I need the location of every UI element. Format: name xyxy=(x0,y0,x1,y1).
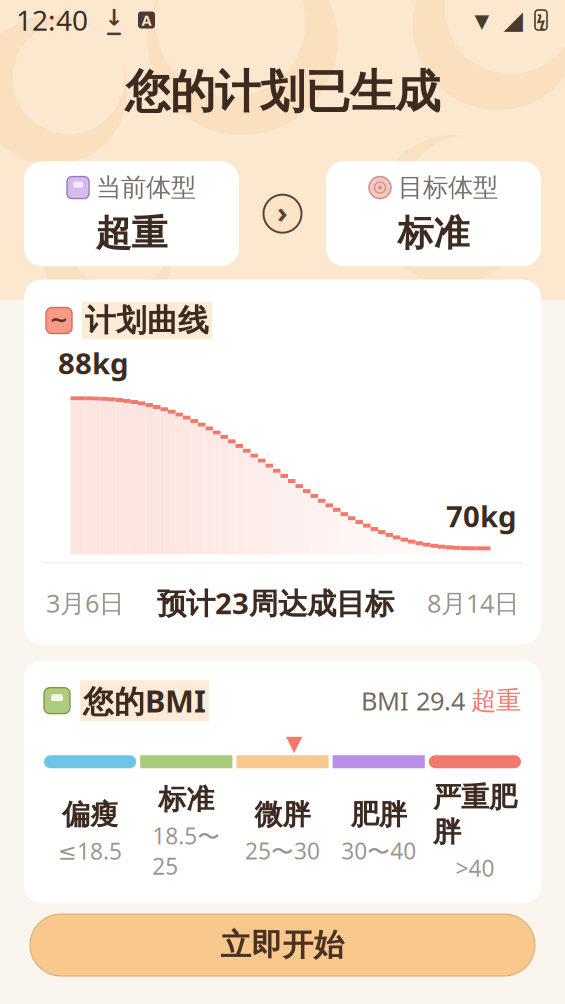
button[interactable]: 立即开始 xyxy=(30,914,535,976)
staticText: 12:40 xyxy=(16,1,88,39)
staticText: 严重肥胖 xyxy=(433,780,517,849)
staticText: >40 xyxy=(455,853,494,883)
staticText: 肥胖 xyxy=(351,797,407,832)
staticText: 标准 xyxy=(158,782,214,817)
staticText: 计划曲线 xyxy=(85,302,209,339)
staticText: 您的计划已生成 xyxy=(125,64,440,120)
button[interactable]: 目标体型 xyxy=(326,161,541,266)
staticText: ϟ xyxy=(536,9,545,31)
staticText: 8月14日 xyxy=(427,586,519,620)
staticText: BMI 29.4 xyxy=(361,684,465,717)
staticText: ≤18.5 xyxy=(58,836,122,866)
staticText: 当前体型 xyxy=(96,172,196,203)
staticText: 您的BMI xyxy=(83,680,206,721)
staticText: 目标体型 xyxy=(398,172,498,203)
staticText: ▼ xyxy=(286,731,302,755)
staticText: 偏瘦 xyxy=(62,797,118,832)
staticText: 70kg xyxy=(446,496,517,535)
button[interactable]: 当前体型 xyxy=(24,161,239,266)
staticText: A xyxy=(141,10,151,30)
staticText: › xyxy=(277,192,288,231)
staticText: ↓ xyxy=(104,5,123,31)
staticText: 立即开始 xyxy=(220,926,344,964)
staticText: 标准 xyxy=(397,211,469,255)
staticText: ◢ xyxy=(503,6,522,34)
staticText: 超重 xyxy=(471,685,521,716)
button[interactable]: 查看体型变化 xyxy=(263,195,301,233)
staticText: 88kg xyxy=(58,343,129,382)
staticText: 30〜40 xyxy=(341,836,416,866)
staticText: ∼ xyxy=(49,307,68,332)
staticText: 微胖 xyxy=(254,797,310,832)
staticText: 超重 xyxy=(95,211,167,255)
staticText: 预计23周达成目标 xyxy=(157,583,394,622)
staticText: 3月6日 xyxy=(46,586,124,620)
staticText: ▾ xyxy=(474,3,489,37)
staticText: 25〜30 xyxy=(245,836,320,866)
staticText: 18.5〜25 xyxy=(152,821,220,881)
